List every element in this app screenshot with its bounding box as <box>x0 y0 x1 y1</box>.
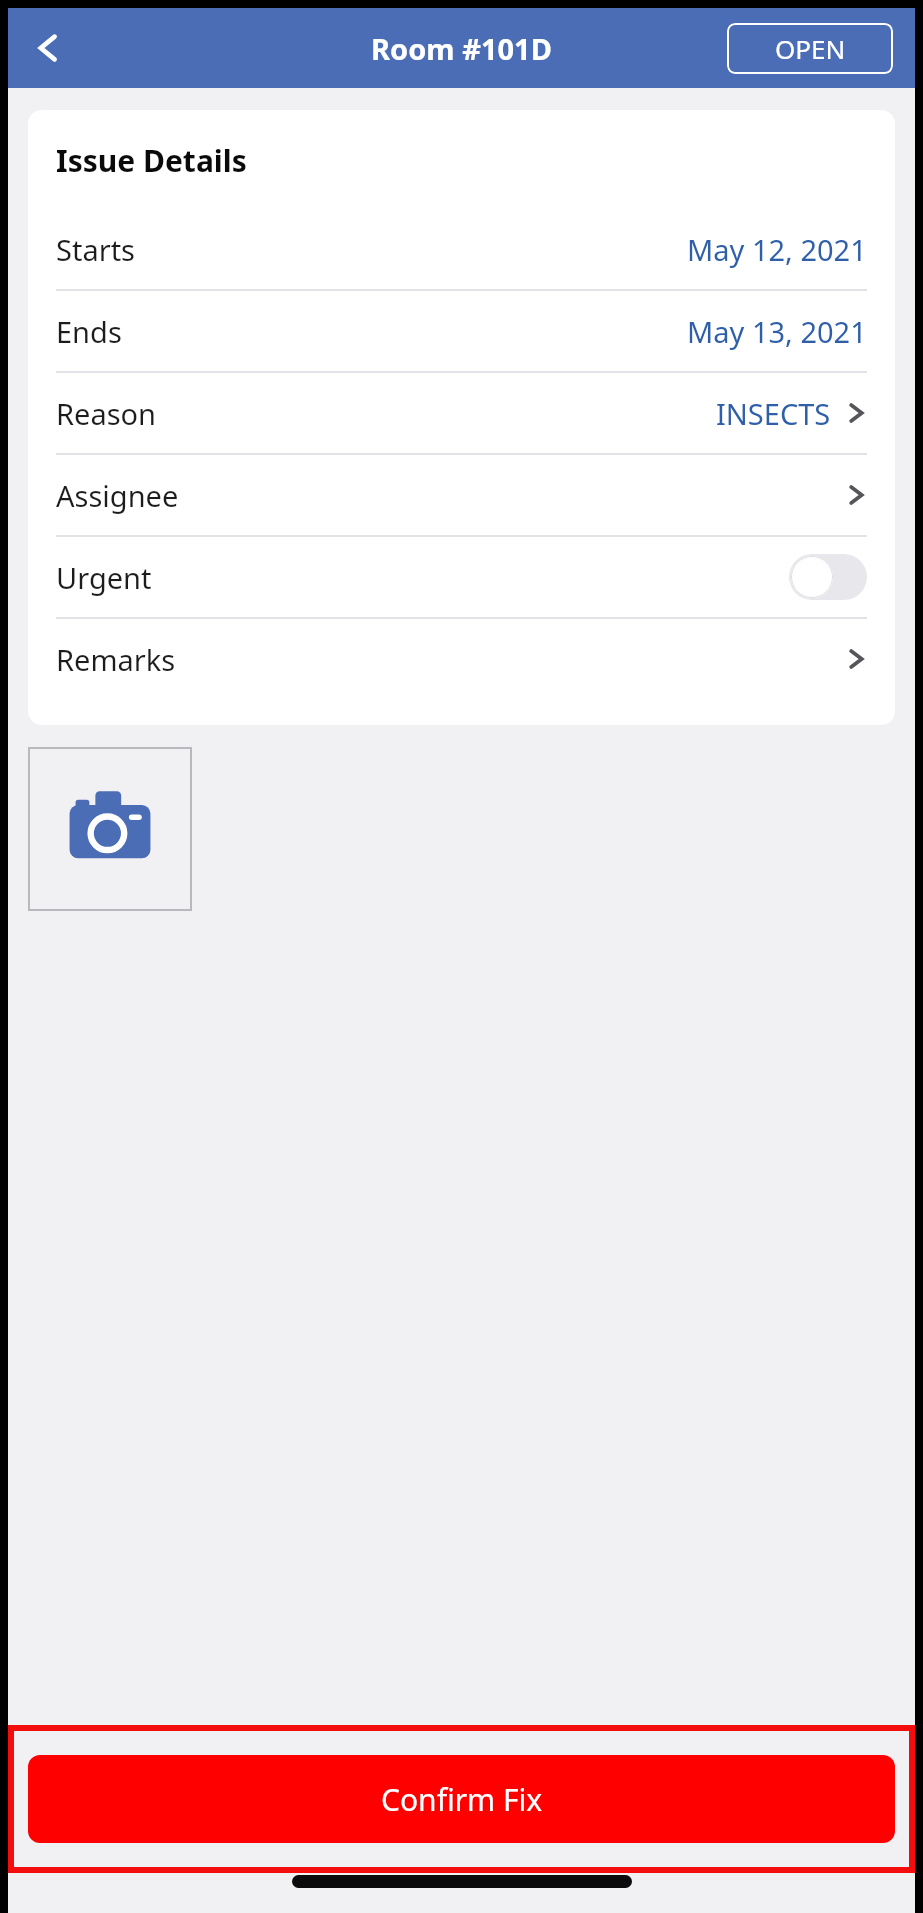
staticText: Reason <box>56 394 157 433</box>
staticText: May 12, 2021 <box>687 230 867 269</box>
button[interactable]: Back <box>16 16 80 80</box>
button[interactable]: Urgent toggle <box>789 554 867 600</box>
staticText: Remarks <box>56 640 176 679</box>
button[interactable]: Assignee <box>28 455 895 535</box>
staticText: Confirm Fix <box>381 1779 543 1820</box>
button[interactable]: OPEN <box>727 23 893 74</box>
staticText: Starts <box>56 230 135 269</box>
staticText: Room #101D <box>371 29 552 68</box>
staticText: OPEN <box>775 31 846 66</box>
button[interactable]: Urgent <box>28 537 895 617</box>
button[interactable]: Add photo <box>28 747 192 911</box>
staticText: INSECTS <box>716 394 831 433</box>
staticText: Ends <box>56 312 122 351</box>
button[interactable]: Starts <box>28 209 895 289</box>
staticText: Urgent <box>56 558 152 597</box>
staticText: Issue Details <box>56 140 247 181</box>
staticText: May 13, 2021 <box>687 312 867 351</box>
button[interactable]: Confirm Fix <box>28 1755 895 1843</box>
staticText: Assignee <box>56 476 179 515</box>
button[interactable]: Ends <box>28 291 895 371</box>
button[interactable]: Remarks <box>28 619 895 699</box>
button[interactable]: Reason <box>28 373 895 453</box>
